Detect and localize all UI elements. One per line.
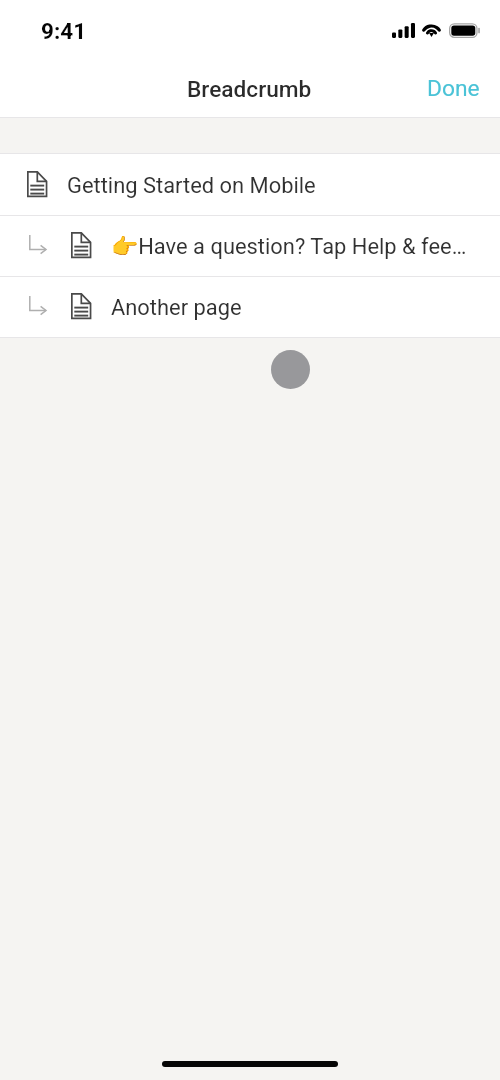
- button[interactable]: Page: [0, 154, 500, 215]
- other: Page: [71, 232, 92, 259]
- staticText: 9:41: [41, 18, 87, 44]
- button[interactable]: Nested page: [0, 277, 500, 337]
- staticText: Another page: [111, 295, 242, 321]
- other: Nested page: [29, 296, 47, 316]
- other: Page: [71, 293, 92, 320]
- other: Cellular signal: [392, 23, 415, 38]
- other: Battery full: [448, 22, 482, 39]
- staticText: Breadcrumb: [187, 76, 312, 103]
- staticText: Getting Started on Mobile: [67, 173, 316, 199]
- staticText: 👉Have a question? Tap Help & fee…: [111, 234, 467, 260]
- other: Wi-Fi: [420, 20, 443, 40]
- other: Page: [27, 171, 48, 198]
- other: Loading: [271, 350, 310, 389]
- button[interactable]: Done: [403, 65, 500, 114]
- other: Nested page: [29, 235, 47, 255]
- staticText: Done: [427, 75, 480, 102]
- button[interactable]: Nested page: [0, 216, 500, 276]
